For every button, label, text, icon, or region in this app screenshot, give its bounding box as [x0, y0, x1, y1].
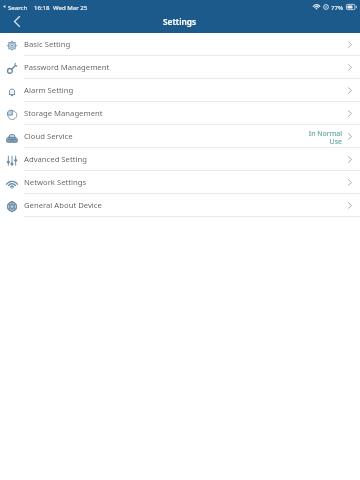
- staticText: Password Management: [24, 62, 110, 72]
- staticText: Advanced Setting: [24, 154, 87, 164]
- staticText: 77%: [331, 3, 344, 11]
- staticText: Alarm Setting: [24, 85, 74, 95]
- staticText: Cloud Service: [24, 131, 73, 141]
- staticText: Settings: [163, 16, 197, 27]
- staticText: 16:18: [34, 3, 50, 11]
- staticText: Search: [8, 3, 28, 11]
- staticText: General About Device: [24, 200, 102, 210]
- button[interactable]: Password Management: [0, 56, 360, 79]
- button[interactable]: Cloud Service: [0, 125, 360, 148]
- staticText: In Normal Use: [308, 129, 342, 146]
- staticText: Storage Management: [24, 108, 103, 118]
- staticText: Basic Setting: [24, 39, 71, 49]
- button[interactable]: Storage Management: [0, 102, 360, 125]
- button[interactable]: Network Settings: [0, 171, 360, 194]
- staticText: Network Settings: [24, 177, 87, 187]
- staticText: Wed Mar 25: [53, 3, 88, 11]
- button[interactable]: Back: [9, 13, 25, 29]
- button[interactable]: Advanced Setting: [0, 148, 360, 171]
- button[interactable]: General About Device: [0, 194, 360, 217]
- button[interactable]: Basic Setting: [0, 33, 360, 56]
- button[interactable]: Alarm Setting: [0, 79, 360, 102]
